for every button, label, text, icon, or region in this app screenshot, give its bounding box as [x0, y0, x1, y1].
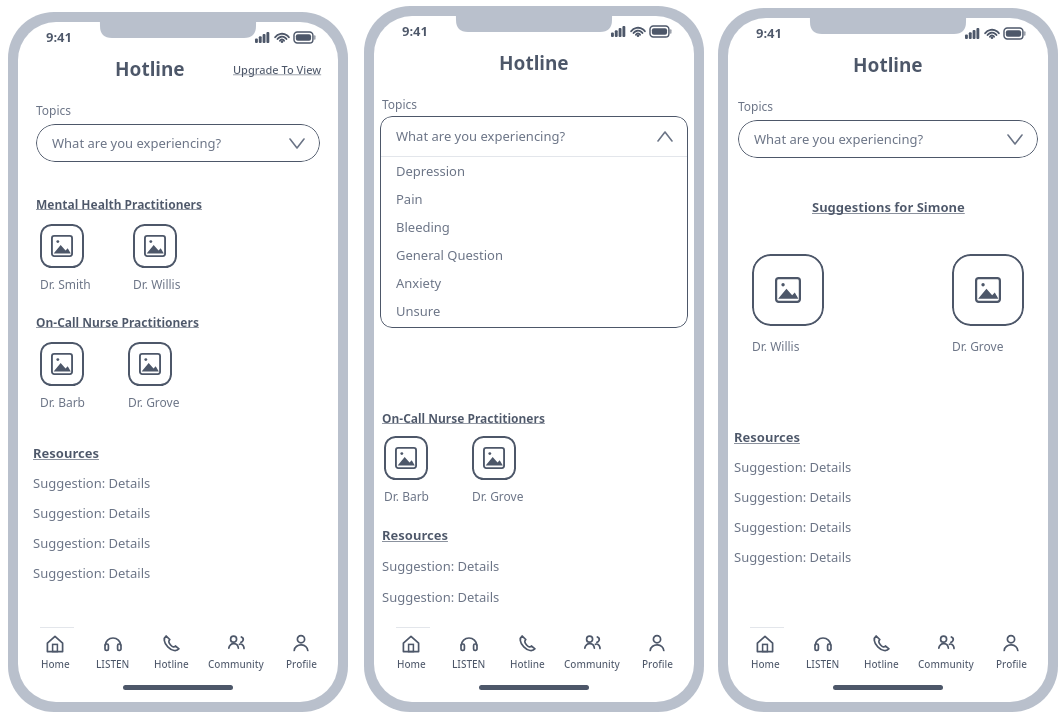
button[interactable]: Home — [26, 628, 84, 676]
button[interactable]: Profile — [982, 628, 1040, 676]
staticText: Dr. Barb — [384, 488, 430, 504]
staticText: Dr. Willis — [133, 276, 181, 292]
button[interactable]: Depression — [380, 157, 688, 185]
button[interactable]: Dr. Willis — [752, 254, 824, 326]
button[interactable]: Suggestion: Details — [728, 518, 1048, 548]
button[interactable]: LISTEN — [794, 628, 852, 676]
button[interactable]: General Question — [380, 241, 688, 269]
staticText: Hotline — [115, 56, 185, 82]
button[interactable]: Hotline — [498, 628, 556, 676]
button[interactable]: Suggestion: Details — [18, 474, 338, 504]
button[interactable]: LISTEN — [84, 628, 142, 676]
staticText: Community — [564, 657, 620, 671]
other: Expand — [1008, 135, 1022, 144]
button[interactable]: Hotline — [142, 628, 200, 676]
button[interactable]: What are you experiencing? — [36, 124, 320, 162]
button[interactable]: Mental Health Practitioners — [382, 302, 549, 318]
staticText: LISTEN — [96, 657, 130, 671]
button[interactable]: Upgrade To View — [233, 62, 322, 77]
button[interactable]: Dr. Barb — [384, 436, 428, 480]
staticText: Topics — [738, 98, 774, 114]
staticText: Home — [397, 657, 426, 671]
other: Expand — [290, 139, 304, 148]
staticText: Mental Health Practitioners — [382, 302, 549, 318]
staticText: Suggestion: Details — [33, 534, 151, 552]
staticText: 9:41 — [756, 24, 782, 42]
staticText: Suggestion: Details — [734, 458, 852, 476]
button[interactable]: Community — [556, 628, 628, 676]
staticText: Dr. Grove — [472, 488, 524, 504]
other: Collapse — [658, 132, 672, 141]
staticText: Profile — [642, 657, 673, 671]
button[interactable]: Home — [382, 628, 440, 676]
staticText: 9:41 — [402, 22, 428, 40]
button[interactable]: Bleeding — [380, 213, 688, 241]
button[interactable]: Dr. Grove — [952, 254, 1024, 326]
button[interactable]: Dr. Grove — [472, 436, 516, 480]
staticText: Mental Health Practitioners — [36, 196, 203, 212]
button[interactable]: Resources — [33, 444, 99, 462]
button[interactable]: Dr. Grove — [128, 342, 172, 386]
staticText: 9:41 — [46, 28, 72, 46]
button[interactable]: Resources — [734, 428, 800, 446]
button[interactable]: Suggestions for Simone — [812, 198, 965, 216]
staticText: Hotline — [510, 657, 545, 671]
staticText: Hotline — [154, 657, 189, 671]
staticText: Community — [918, 657, 974, 671]
button[interactable]: Mental Health Practitioners — [36, 196, 203, 212]
button[interactable]: Suggestion: Details — [18, 534, 338, 564]
button[interactable]: Suggestion: Details — [374, 557, 694, 588]
button[interactable]: Resources — [382, 526, 448, 544]
button[interactable]: Profile — [272, 628, 330, 676]
button[interactable]: Unsure — [380, 297, 688, 325]
staticText: Dr. Willis — [752, 338, 800, 354]
staticText: On-Call Nurse Practitioners — [382, 410, 545, 426]
staticText: LISTEN — [452, 657, 486, 671]
button[interactable]: On-Call Nurse Practitioners — [382, 410, 545, 426]
staticText: Dr. Smith — [40, 276, 91, 292]
button[interactable]: Suggestion: Details — [728, 488, 1048, 518]
button[interactable]: Profile — [628, 628, 686, 676]
staticText: Dr. Grove — [952, 338, 1004, 354]
staticText: Upgrade To View — [233, 62, 322, 77]
button[interactable]: Community — [910, 628, 982, 676]
staticText: Suggestion: Details — [734, 518, 852, 536]
button[interactable]: Dr. Willis — [133, 224, 177, 268]
staticText: Unsure — [396, 302, 441, 320]
staticText: General Question — [396, 246, 503, 264]
button[interactable]: Hotline — [852, 628, 910, 676]
staticText: Home — [41, 657, 70, 671]
button[interactable]: Suggestion: Details — [728, 548, 1048, 578]
button[interactable]: Pain — [380, 185, 688, 213]
staticText: Hotline — [499, 50, 569, 76]
staticText: Suggestions for Simone — [812, 198, 965, 216]
button[interactable]: What are you experiencing? — [380, 116, 688, 156]
staticText: On-Call Nurse Practitioners — [36, 314, 199, 330]
staticText: Topics — [382, 96, 418, 112]
button[interactable]: Suggestion: Details — [728, 458, 1048, 488]
button[interactable]: Dr. Barb — [40, 342, 84, 386]
button[interactable]: Community — [200, 628, 272, 676]
button[interactable]: Suggestion: Details — [18, 564, 338, 594]
staticText: Suggestion: Details — [33, 564, 151, 582]
staticText: Resources — [33, 444, 99, 462]
button[interactable]: Suggestion: Details — [374, 588, 694, 619]
staticText: Depression — [396, 162, 465, 180]
staticText: Hotline — [853, 52, 923, 78]
staticText: Dr. Barb — [40, 394, 86, 410]
button[interactable]: Suggestion: Details — [18, 504, 338, 534]
button[interactable]: On-Call Nurse Practitioners — [36, 314, 199, 330]
button[interactable]: Dr. Smith — [40, 224, 84, 268]
button[interactable]: Home — [736, 628, 794, 676]
staticText: Suggestion: Details — [33, 474, 151, 492]
staticText: What are you experiencing? — [396, 127, 566, 145]
button[interactable]: Anxiety — [380, 269, 688, 297]
button[interactable]: What are you experiencing? — [738, 120, 1038, 158]
staticText: Dr. Grove — [128, 394, 180, 410]
staticText: Suggestion: Details — [382, 557, 500, 575]
staticText: Hotline — [864, 657, 899, 671]
button[interactable]: LISTEN — [440, 628, 498, 676]
staticText: Home — [751, 657, 780, 671]
staticText: LISTEN — [806, 657, 840, 671]
staticText: Resources — [382, 526, 448, 544]
